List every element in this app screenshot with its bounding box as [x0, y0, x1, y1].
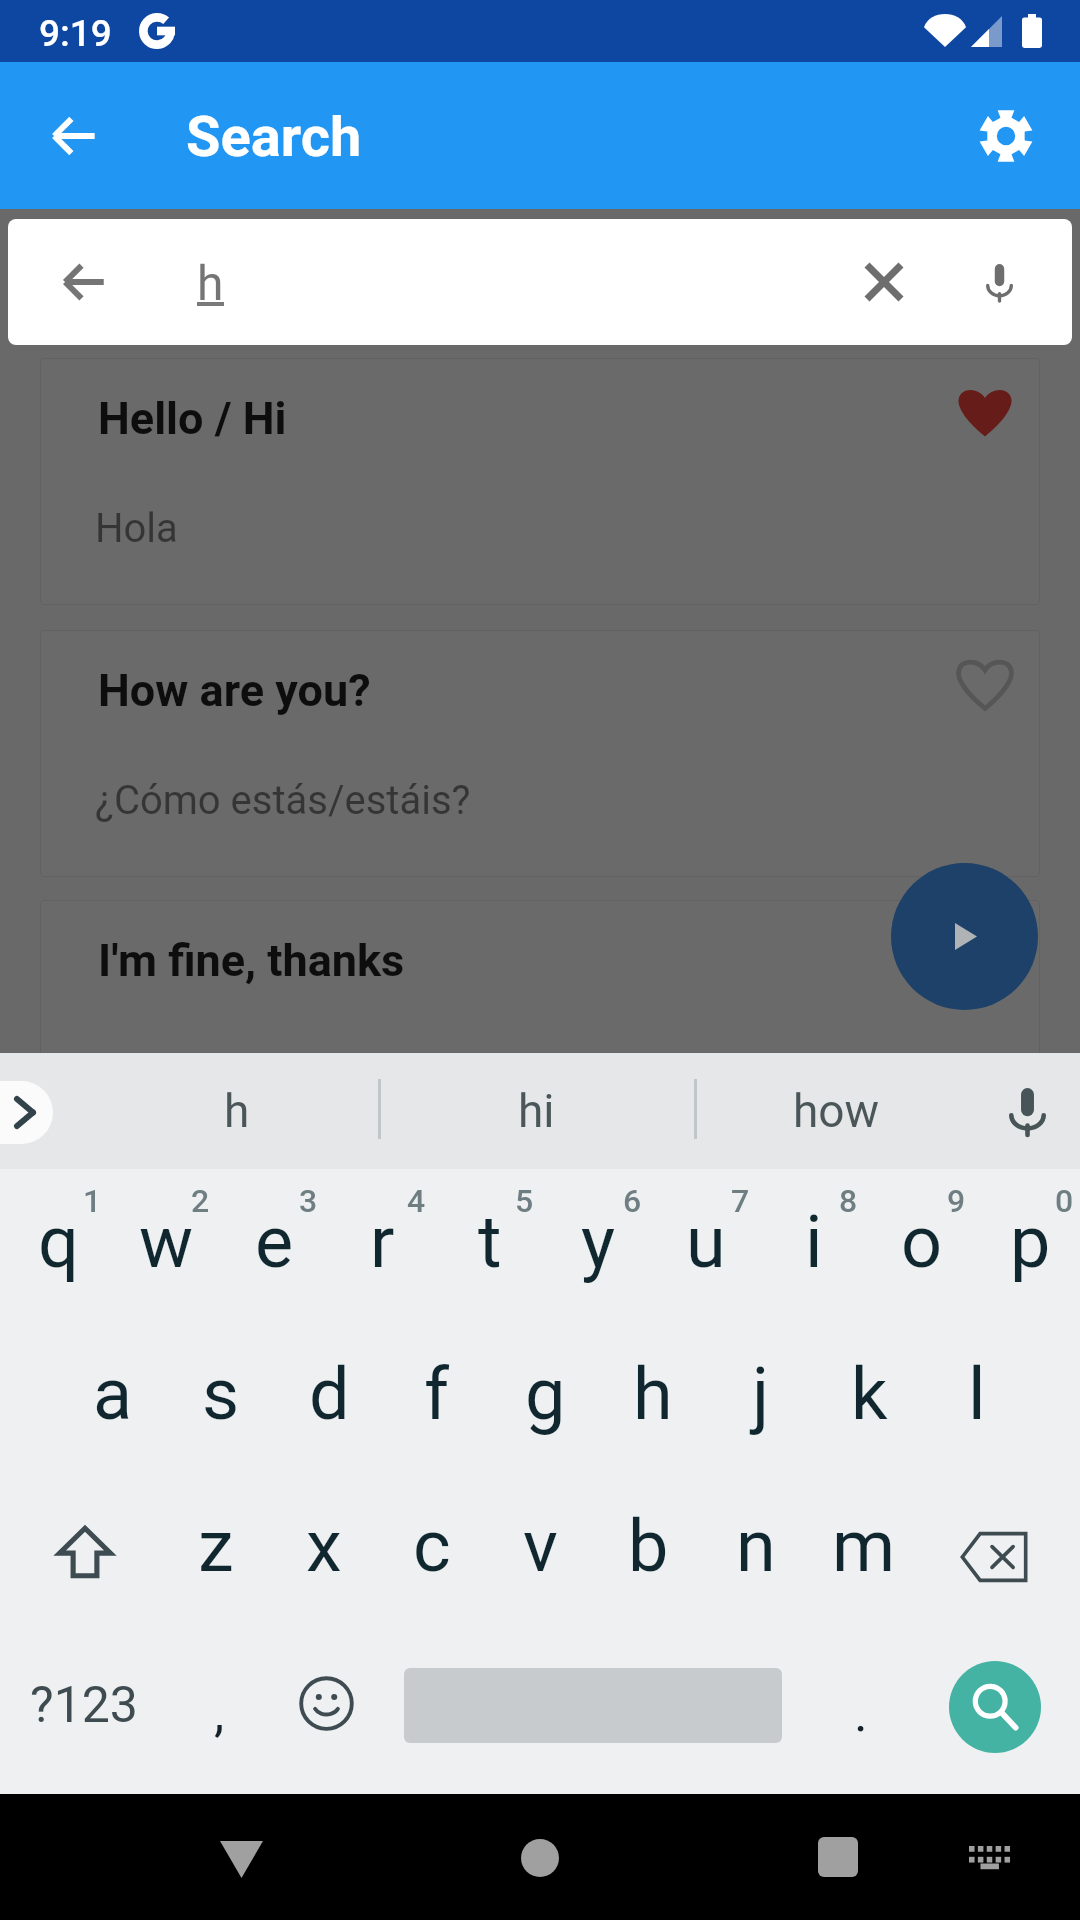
staticText: 3: [299, 1182, 318, 1220]
staticText: 1: [83, 1182, 102, 1220]
button[interactable]: ,: [176, 1625, 282, 1777]
staticText: h: [197, 255, 224, 311]
staticText: how: [793, 1084, 880, 1138]
staticText: Hello / Hi: [98, 392, 287, 445]
button[interactable]: h: [599, 1318, 707, 1470]
button[interactable]: Back: [34, 232, 134, 332]
button[interactable]: m: [810, 1470, 918, 1622]
button[interactable]: Change keyboard: [940, 1809, 1036, 1905]
button[interactable]: w: [108, 1169, 216, 1321]
button[interactable]: Favourite: [945, 372, 1025, 452]
staticText: 5: [515, 1182, 534, 1220]
staticText: r: [370, 1200, 395, 1284]
button[interactable]: o: [864, 1169, 972, 1321]
staticText: c: [413, 1504, 451, 1588]
staticText: I'm fine, thanks: [98, 934, 405, 987]
staticText: w: [139, 1200, 194, 1284]
button[interactable]: Clear query: [834, 232, 934, 332]
button[interactable]: how: [761, 1053, 911, 1169]
staticText: t: [478, 1200, 502, 1284]
button[interactable]: x: [270, 1470, 378, 1622]
staticText: s: [202, 1352, 240, 1436]
button[interactable]: z: [162, 1470, 270, 1622]
staticText: .: [854, 1683, 868, 1744]
button[interactable]: Emoji: [282, 1625, 388, 1777]
staticText: o: [901, 1200, 943, 1284]
button[interactable]: ?123: [0, 1625, 176, 1777]
button[interactable]: p: [972, 1169, 1080, 1321]
staticText: h: [633, 1352, 673, 1436]
staticText: Hola: [95, 505, 178, 552]
button[interactable]: Expand suggestions: [0, 1081, 53, 1144]
button[interactable]: k: [815, 1318, 923, 1470]
button[interactable]: j: [707, 1318, 815, 1470]
staticText: p: [1010, 1200, 1051, 1284]
staticText: a: [93, 1352, 133, 1436]
button[interactable]: h: [162, 1053, 312, 1169]
button[interactable]: l: [923, 1318, 1031, 1470]
staticText: k: [851, 1352, 888, 1436]
button[interactable]: Favourite: [945, 644, 1025, 724]
staticText: g: [525, 1352, 566, 1436]
button[interactable]: Settings: [958, 88, 1054, 184]
staticText: 8: [839, 1182, 858, 1220]
staticText: f: [424, 1352, 450, 1436]
staticText: 6: [623, 1182, 642, 1220]
staticText: 4: [407, 1182, 426, 1220]
staticText: u: [686, 1200, 726, 1284]
staticText: ?123: [30, 1676, 138, 1735]
button[interactable]: g: [491, 1318, 599, 1470]
button[interactable]: v: [486, 1470, 594, 1622]
button[interactable]: c: [378, 1470, 486, 1622]
staticText: h: [224, 1084, 250, 1138]
staticText: q: [38, 1200, 79, 1284]
staticText: 0: [1055, 1182, 1074, 1220]
button[interactable]: q: [0, 1169, 108, 1321]
button[interactable]: e: [216, 1169, 324, 1321]
button[interactable]: u: [648, 1169, 756, 1321]
button[interactable]: Voice search: [949, 232, 1049, 332]
button[interactable]: Voice input: [985, 1071, 1065, 1151]
button[interactable]: f: [383, 1318, 491, 1470]
button[interactable]: Search: [949, 1661, 1041, 1753]
staticText: ,: [214, 1683, 225, 1744]
staticText: i: [805, 1200, 823, 1284]
button[interactable]: y: [540, 1169, 648, 1321]
button[interactable]: .: [806, 1625, 912, 1777]
staticText: y: [581, 1200, 616, 1284]
button[interactable]: How are you?: [40, 630, 1040, 877]
button[interactable]: Favourite: [945, 914, 1025, 994]
staticText: hi: [518, 1084, 555, 1138]
staticText: v: [523, 1504, 558, 1588]
staticText: 7: [731, 1182, 750, 1220]
button[interactable]: r: [324, 1169, 432, 1321]
staticText: l: [968, 1352, 986, 1436]
button[interactable]: Hello / Hi: [40, 358, 1040, 605]
staticText: j: [752, 1352, 770, 1436]
staticText: e: [255, 1200, 294, 1284]
button[interactable]: hi: [461, 1053, 611, 1169]
button[interactable]: Play: [891, 863, 1038, 1010]
button[interactable]: d: [275, 1318, 383, 1470]
button[interactable]: I'm fine, thanks: [40, 900, 1040, 1147]
staticText: Search: [186, 104, 362, 170]
button[interactable]: s: [167, 1318, 275, 1470]
button[interactable]: i: [756, 1169, 864, 1321]
button[interactable]: Recents: [790, 1809, 886, 1905]
button[interactable]: Shift: [0, 1470, 162, 1622]
button[interactable]: t: [432, 1169, 540, 1321]
staticText: n: [736, 1504, 776, 1588]
staticText: z: [198, 1504, 234, 1588]
button[interactable]: Home: [492, 1809, 588, 1905]
button[interactable]: b: [594, 1470, 702, 1622]
staticText: 9: [947, 1182, 966, 1220]
button[interactable]: a: [59, 1318, 167, 1470]
button[interactable]: Backspace: [918, 1470, 1080, 1622]
button[interactable]: Hide keyboard: [192, 1809, 288, 1905]
button[interactable]: Back: [26, 88, 122, 184]
staticText: d: [309, 1352, 350, 1436]
staticText: b: [628, 1504, 669, 1588]
button[interactable]: n: [702, 1470, 810, 1622]
staticText: m: [832, 1504, 896, 1588]
